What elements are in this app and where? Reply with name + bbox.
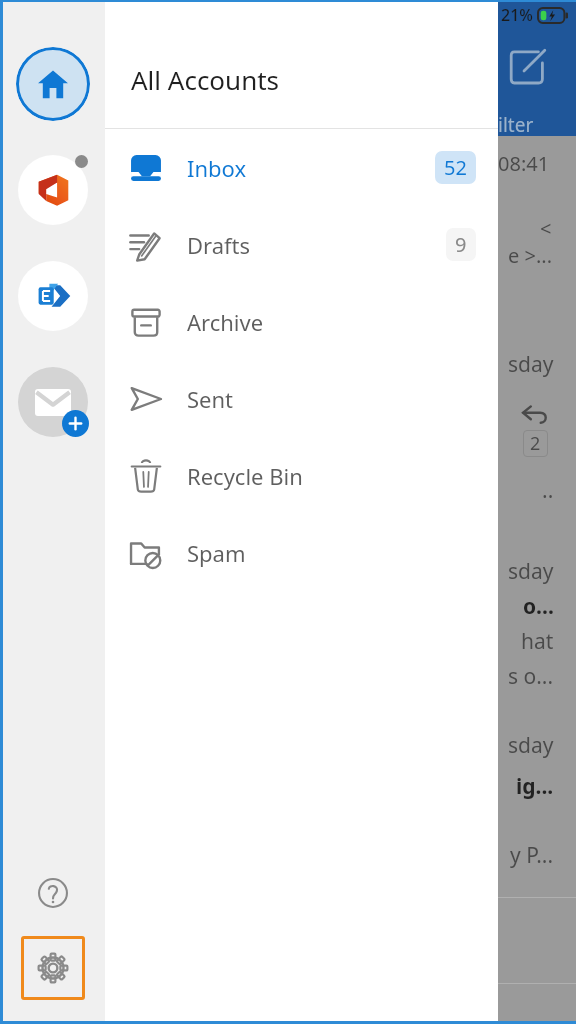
staticText: .. (542, 476, 554, 505)
button[interactable]: Compose (505, 44, 551, 90)
button[interactable]: Archive (105, 283, 498, 360)
staticText: 2 (530, 431, 541, 456)
button[interactable]: Drafts (105, 206, 498, 283)
staticText: ig... (516, 772, 554, 801)
staticText: 52 (444, 154, 467, 181)
button[interactable]: Help (22, 862, 84, 924)
staticText: Spam (187, 538, 476, 568)
staticText: s o... (508, 662, 554, 691)
staticText: Recycle Bin (187, 461, 476, 491)
staticText: Sent (187, 384, 476, 414)
staticText: y P... (510, 841, 554, 870)
button[interactable]: All Accounts (105, 30, 498, 128)
staticText: All Accounts (131, 62, 280, 97)
staticText: < (540, 215, 552, 242)
staticText: e >... (508, 242, 552, 269)
staticText: 08:41 (498, 150, 550, 177)
button[interactable]: All Accounts (14, 45, 92, 123)
staticText: ilter (498, 112, 534, 138)
button[interactable]: Settings (21, 936, 85, 1000)
button[interactable]: Recycle Bin (105, 437, 498, 514)
button[interactable]: Sent (105, 360, 498, 437)
staticText: 9 (455, 231, 467, 258)
button[interactable]: Spam (105, 514, 498, 591)
staticText: Inbox (187, 153, 435, 183)
staticText: sday (508, 557, 554, 586)
button[interactable]: Inbox (105, 129, 498, 206)
staticText: sday (508, 350, 554, 379)
staticText: sday (508, 731, 554, 760)
staticText: hat (521, 627, 554, 656)
button[interactable]: Add account (16, 365, 90, 439)
staticText: Archive (187, 307, 476, 337)
staticText: 21% (501, 4, 533, 26)
staticText: o... (523, 592, 554, 621)
button[interactable]: Office account (16, 153, 90, 227)
staticText: Drafts (187, 230, 446, 260)
button[interactable]: Exchange account (18, 261, 88, 331)
